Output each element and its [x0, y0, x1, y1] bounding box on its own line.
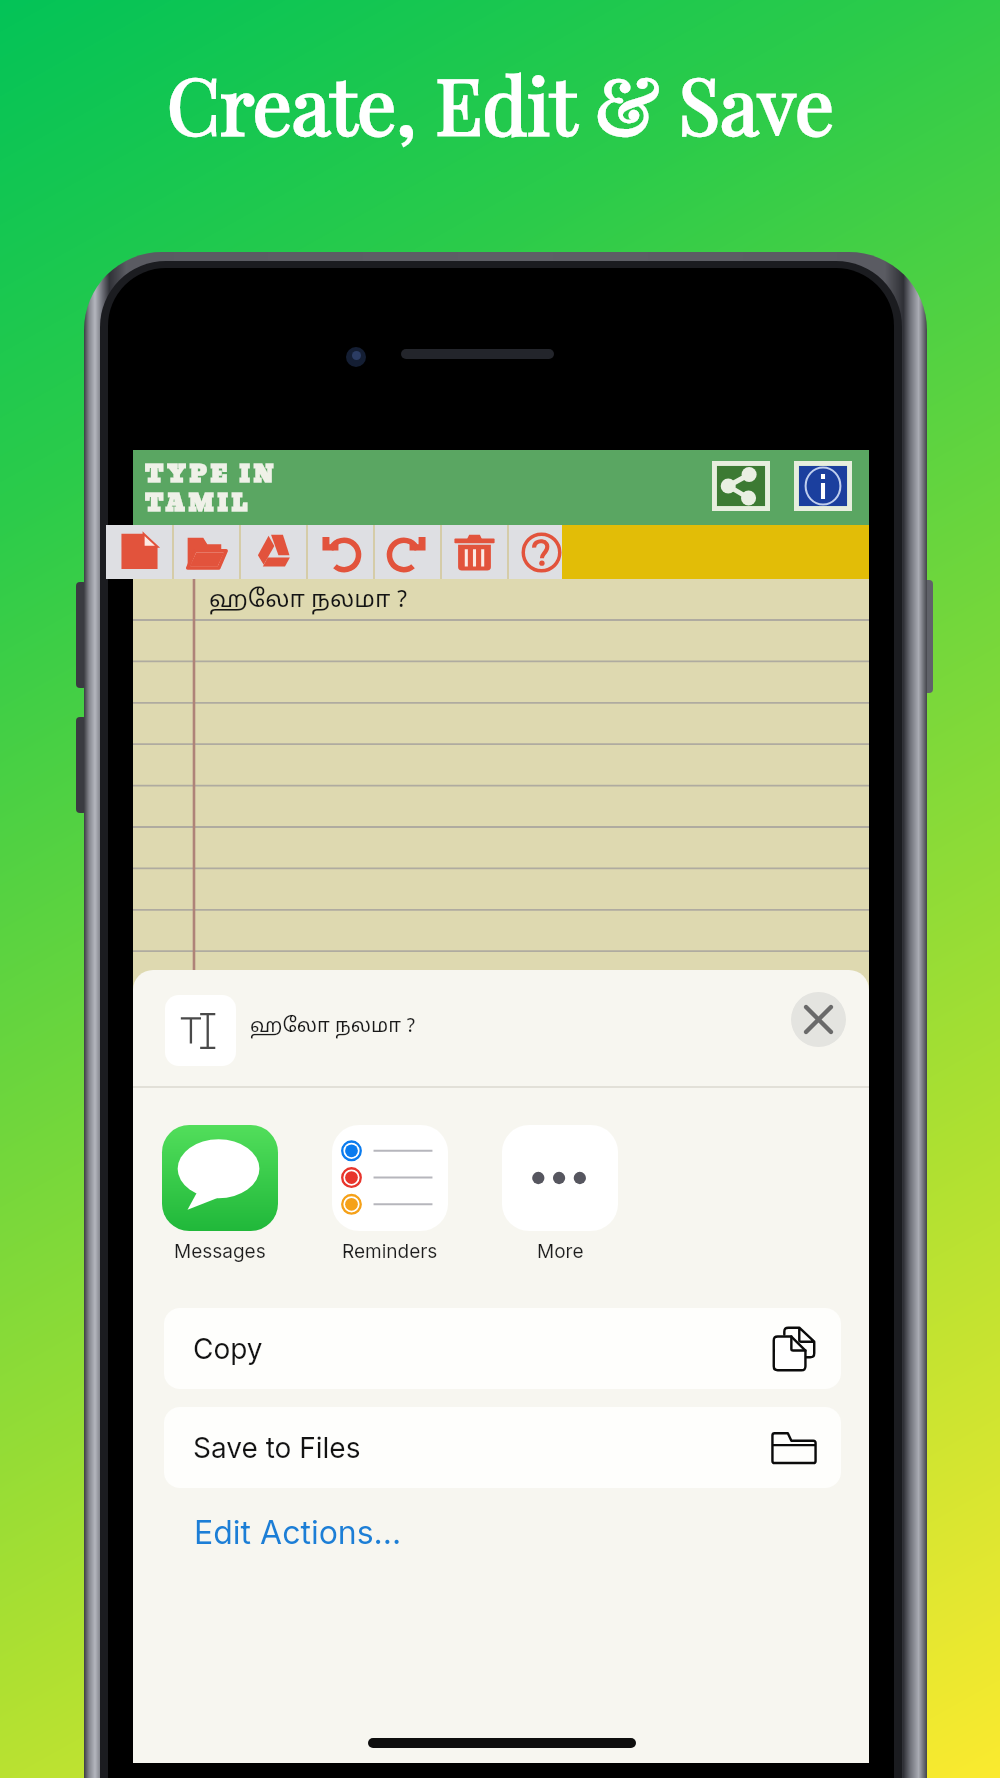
staticText: More [537, 1240, 584, 1263]
staticText: Copy [193, 1332, 263, 1366]
button[interactable]: Google Drive [240, 525, 307, 579]
staticText: TAMIL [145, 486, 251, 521]
staticText: Edit Actions... [194, 1513, 402, 1552]
button[interactable]: Undo [307, 525, 374, 579]
staticText: Save to Files [193, 1431, 361, 1465]
button[interactable]: Edit Actions... [194, 1513, 402, 1552]
button[interactable]: Reminders [290, 1125, 490, 1263]
staticText: Messages [174, 1240, 266, 1263]
staticText: ஹலோ நலமா ? [209, 586, 408, 616]
button[interactable]: Open [173, 525, 240, 579]
button[interactable]: More [460, 1125, 660, 1263]
button[interactable]: Messages [133, 1125, 320, 1263]
button[interactable]: Save to Files [164, 1407, 841, 1488]
button[interactable]: New file [106, 525, 173, 579]
button[interactable]: Close [791, 992, 846, 1047]
button[interactable]: Share [712, 461, 770, 511]
staticText: ஹலோ நலமா ? [250, 1015, 416, 1040]
button[interactable]: Copy [164, 1308, 841, 1389]
staticText: TYPE IN [145, 457, 278, 492]
button[interactable]: Help [508, 525, 575, 579]
staticText: Create, Edit & Save [167, 52, 834, 155]
staticText: Reminders [342, 1240, 438, 1263]
button[interactable]: Redo [374, 525, 441, 579]
button[interactable]: Delete [441, 525, 508, 579]
button[interactable]: Info [794, 461, 852, 511]
